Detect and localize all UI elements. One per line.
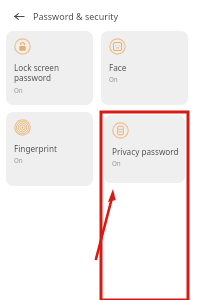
button[interactable]: Lock screen password xyxy=(6,31,93,105)
staticText: On xyxy=(109,75,118,83)
staticText: Password & security xyxy=(33,10,119,22)
staticText: Lock screen password xyxy=(14,62,60,84)
button[interactable]: Fingerprint xyxy=(6,112,93,186)
button[interactable]: Face xyxy=(101,31,188,105)
staticText: On xyxy=(112,159,121,167)
staticText: Face xyxy=(109,62,127,73)
button[interactable]: Privacy password xyxy=(104,115,185,183)
staticText: Privacy password xyxy=(112,146,179,157)
staticText: Fingerprint xyxy=(14,143,58,154)
staticText: On xyxy=(14,86,23,94)
button[interactable]: Back xyxy=(9,6,29,26)
staticText: On xyxy=(14,156,23,164)
